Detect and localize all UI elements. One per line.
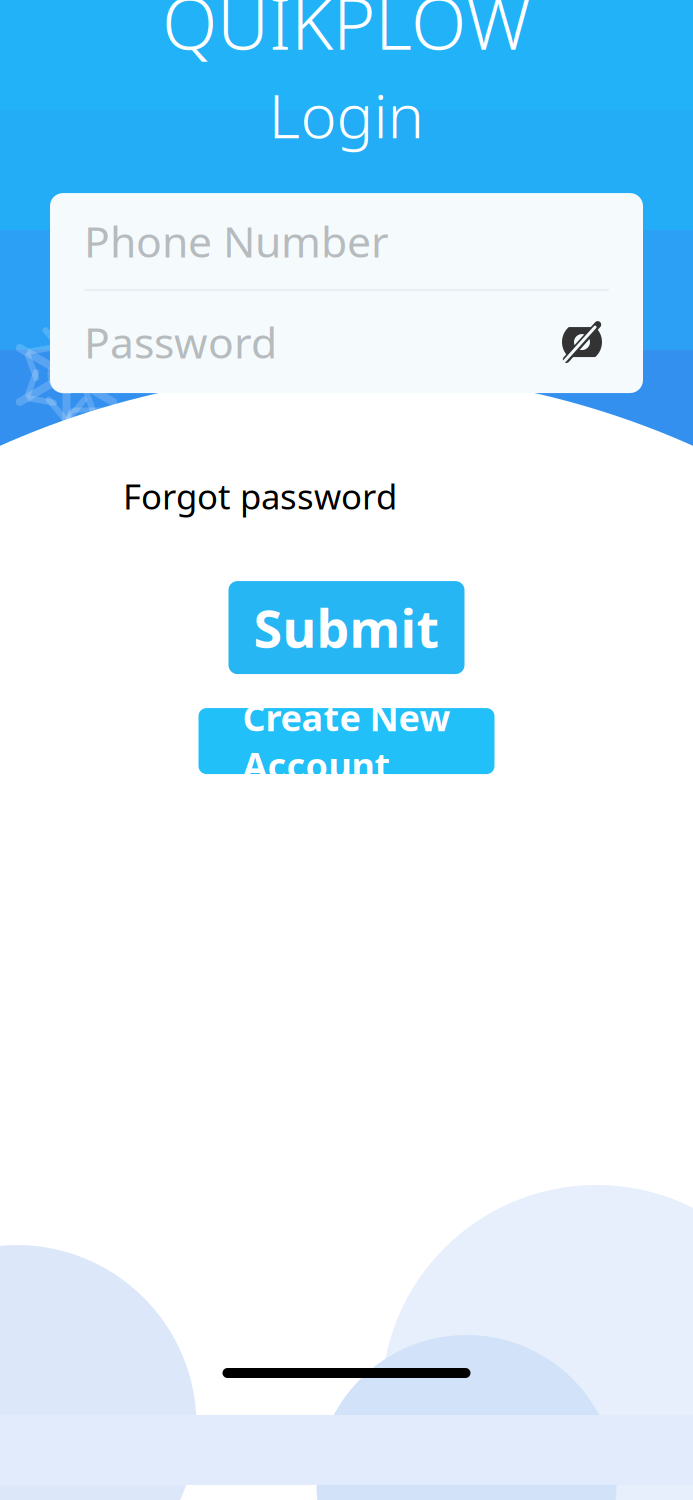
- button[interactable]: Submit: [228, 581, 464, 674]
- staticText: Forgot password: [123, 473, 397, 519]
- staticText: QUIKPLOW: [162, 0, 531, 70]
- staticText: Password: [84, 314, 277, 370]
- staticText: Submit: [253, 593, 439, 662]
- button[interactable]: Forgot password: [123, 465, 397, 527]
- staticText: Phone Number: [84, 213, 389, 269]
- button[interactable]: Password: [50, 291, 643, 393]
- button[interactable]: Phone Number: [50, 193, 643, 289]
- staticText: Login: [268, 74, 424, 155]
- staticText: Create New Account: [242, 693, 450, 789]
- button[interactable]: Create New Account: [198, 708, 494, 774]
